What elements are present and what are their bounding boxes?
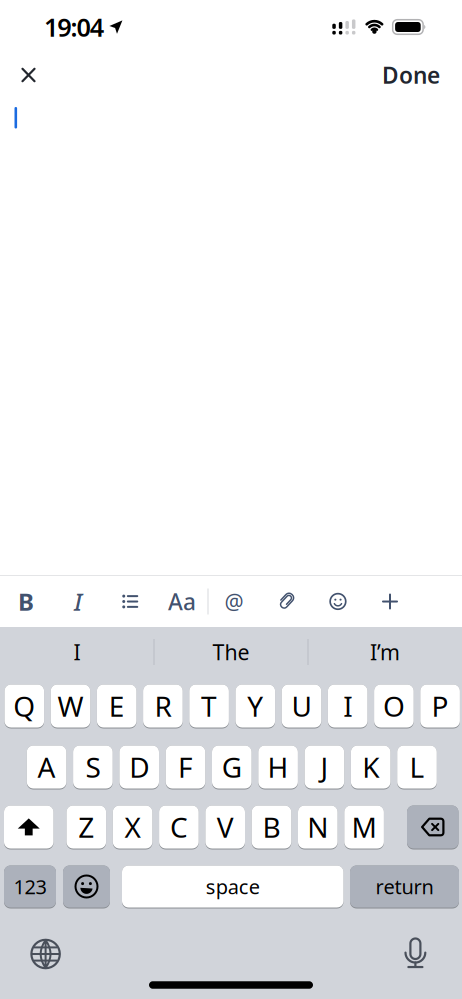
- staticText: A: [38, 748, 56, 786]
- staticText: Y: [247, 687, 263, 725]
- button[interactable]: J: [305, 745, 344, 789]
- button[interactable]: Z: [66, 805, 106, 849]
- button[interactable]: Add: [364, 576, 416, 627]
- staticText: I: [73, 638, 80, 666]
- button[interactable]: K: [351, 745, 390, 789]
- button[interactable]: V: [205, 805, 245, 849]
- staticText: V: [217, 808, 234, 846]
- button[interactable]: Bold: [0, 576, 52, 627]
- button[interactable]: H: [258, 745, 298, 789]
- staticText: J: [320, 748, 328, 786]
- staticText: B: [18, 586, 34, 617]
- staticText: N: [307, 808, 328, 846]
- button[interactable]: B: [252, 805, 291, 849]
- staticText: Z: [78, 808, 94, 846]
- staticText: Aa: [168, 586, 196, 616]
- button[interactable]: space: [122, 865, 343, 908]
- button[interactable]: Mention: [208, 576, 260, 627]
- button[interactable]: return: [350, 865, 459, 908]
- button[interactable]: Dictation: [405, 938, 426, 969]
- button[interactable]: I: [328, 684, 367, 728]
- staticText: 19:04: [44, 10, 104, 44]
- staticText: M: [352, 808, 377, 846]
- staticText: B: [262, 808, 280, 846]
- button[interactable]: Italic: [52, 576, 104, 627]
- staticText: T: [201, 687, 217, 725]
- staticText: I: [74, 586, 82, 617]
- button[interactable]: A: [27, 745, 66, 789]
- button[interactable]: Y: [235, 684, 275, 728]
- staticText: @: [224, 587, 243, 616]
- button[interactable]: O: [374, 684, 414, 728]
- button[interactable]: Text format: [156, 576, 208, 627]
- button[interactable]: R: [143, 684, 183, 728]
- button[interactable]: X: [113, 805, 152, 849]
- button[interactable]: Close: [8, 55, 48, 95]
- button[interactable]: Emoji: [63, 865, 110, 908]
- button[interactable]: W: [51, 684, 90, 728]
- button[interactable]: Emoji: [312, 576, 364, 627]
- button[interactable]: Suggestion The: [154, 627, 308, 676]
- staticText: S: [85, 748, 100, 786]
- button[interactable]: Suggestion I: [0, 627, 154, 676]
- button[interactable]: Suggestion I’m: [308, 627, 462, 676]
- staticText: Q: [13, 687, 35, 725]
- button[interactable]: G: [212, 745, 252, 789]
- staticText: return: [375, 873, 433, 900]
- staticText: P: [432, 687, 449, 725]
- staticText: E: [109, 687, 125, 725]
- button[interactable]: Delete: [407, 805, 458, 849]
- staticText: space: [206, 873, 260, 900]
- button[interactable]: S: [73, 745, 113, 789]
- staticText: I’m: [370, 638, 400, 666]
- button[interactable]: M: [344, 805, 384, 849]
- button[interactable]: Shift: [4, 805, 53, 849]
- button[interactable]: D: [119, 745, 159, 789]
- button[interactable]: U: [282, 684, 321, 728]
- staticText: G: [222, 748, 242, 786]
- button[interactable]: Q: [4, 684, 44, 728]
- staticText: L: [409, 748, 424, 786]
- button[interactable]: Bulleted list: [104, 576, 156, 627]
- staticText: I: [343, 687, 352, 725]
- staticText: U: [291, 687, 311, 725]
- staticText: 123: [13, 873, 46, 900]
- button[interactable]: Next keyboard: [31, 939, 60, 968]
- button[interactable]: N: [298, 805, 338, 849]
- button[interactable]: Attach file: [260, 576, 312, 627]
- button[interactable]: Numbers: [4, 865, 56, 908]
- staticText: Done: [382, 60, 440, 90]
- button[interactable]: E: [97, 684, 136, 728]
- staticText: F: [178, 748, 193, 786]
- staticText: D: [129, 748, 149, 786]
- staticText: The: [212, 638, 249, 666]
- staticText: R: [154, 687, 171, 725]
- staticText: C: [170, 808, 188, 846]
- staticText: O: [383, 687, 405, 725]
- staticText: X: [125, 808, 141, 846]
- button[interactable]: F: [166, 745, 205, 789]
- button[interactable]: L: [397, 745, 437, 789]
- button[interactable]: T: [189, 684, 229, 728]
- button[interactable]: Done: [382, 52, 440, 98]
- staticText: H: [268, 748, 289, 786]
- button[interactable]: P: [420, 684, 460, 728]
- button[interactable]: C: [159, 805, 199, 849]
- staticText: W: [57, 687, 83, 725]
- staticText: K: [362, 748, 379, 786]
